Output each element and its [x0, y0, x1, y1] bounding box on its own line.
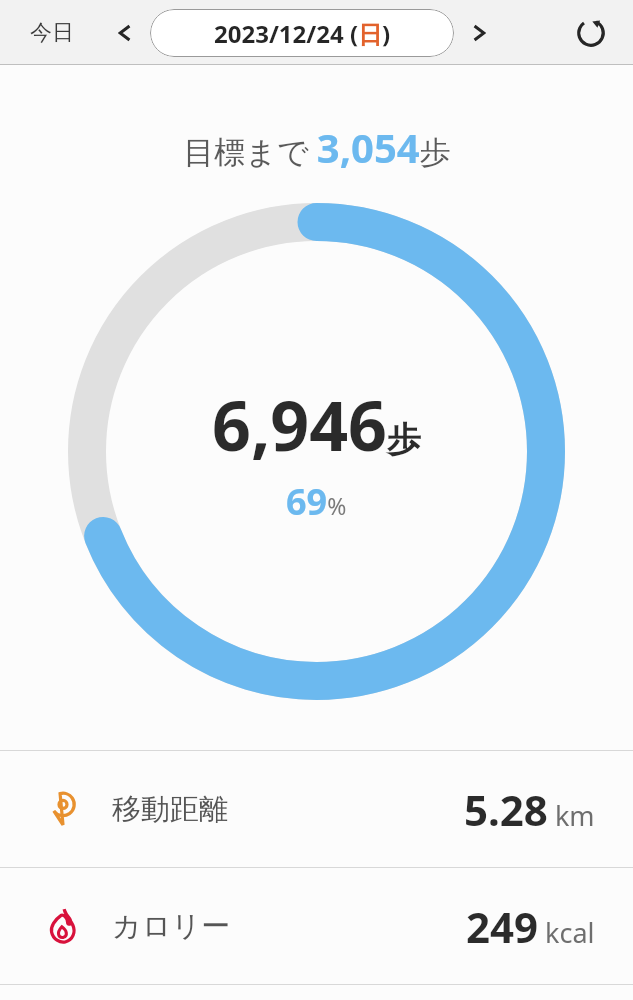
button[interactable]: Refresh — [565, 7, 617, 59]
button[interactable]: 2023/12/24 (日) — [150, 9, 454, 57]
staticText: 5.28 km — [464, 781, 595, 838]
button[interactable]: Next day — [460, 13, 500, 53]
staticText: 6,946歩 — [212, 378, 421, 471]
staticText: 目標まで 3,054歩 — [183, 120, 451, 174]
staticText: 移動距離 — [112, 791, 228, 828]
staticText: 249 kcal — [466, 898, 595, 955]
button[interactable]: Calories — [0, 868, 633, 984]
other: Calories — [44, 907, 82, 945]
staticText: 69% — [286, 477, 347, 526]
staticText: カロリー — [112, 908, 231, 945]
other: Distance — [44, 790, 82, 828]
button[interactable]: Distance — [0, 751, 633, 867]
button[interactable]: 今日 — [26, 13, 78, 53]
staticText: 今日 — [30, 19, 74, 47]
staticText: 2023/12/24 (日) — [214, 17, 391, 50]
button[interactable]: Previous day — [104, 13, 144, 53]
